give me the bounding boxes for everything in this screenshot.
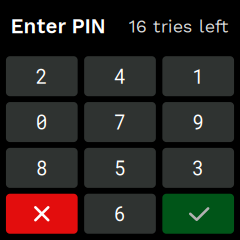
button[interactable]: 3 xyxy=(162,148,234,188)
staticText: 3 xyxy=(192,155,204,181)
button[interactable]: 7 xyxy=(84,102,156,142)
staticText: 0 xyxy=(36,109,48,135)
button[interactable]: 5 xyxy=(84,148,156,188)
staticText: 2 xyxy=(36,63,48,89)
button[interactable]: 4 xyxy=(84,56,156,96)
staticText: 4 xyxy=(114,63,126,89)
button[interactable]: 2 xyxy=(6,56,78,96)
staticText: 9 xyxy=(192,109,204,135)
button[interactable]: Confirm xyxy=(162,194,234,234)
staticText: 7 xyxy=(114,109,126,135)
staticText: 16 tries left xyxy=(129,16,229,37)
staticText: 8 xyxy=(36,155,48,181)
staticText: Enter PIN xyxy=(11,14,106,38)
staticText: 1 xyxy=(192,63,204,89)
staticText: 6 xyxy=(114,201,126,226)
staticText: 5 xyxy=(114,155,126,181)
button[interactable]: 9 xyxy=(162,102,234,142)
button[interactable]: 6 xyxy=(84,194,156,234)
button[interactable]: 1 xyxy=(162,56,234,96)
button[interactable]: 8 xyxy=(6,148,78,188)
button[interactable]: Cancel xyxy=(6,194,78,234)
button[interactable]: 0 xyxy=(6,102,78,142)
